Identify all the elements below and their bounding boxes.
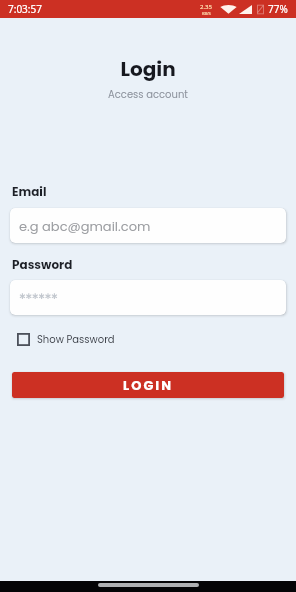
button[interactable]: e.g abc@gmail.com: [10, 208, 286, 243]
staticText: 77%: [268, 2, 288, 16]
staticText: Access account: [0, 87, 296, 101]
staticText: 7:03:57: [8, 2, 42, 16]
button[interactable]: LOGIN: [12, 372, 284, 398]
staticText: KB/S: [202, 11, 211, 16]
staticText: 2.35: [200, 3, 212, 11]
button[interactable]: Show Password: [17, 332, 115, 346]
staticText: LOGIN: [123, 376, 173, 394]
staticText: Show Password: [37, 332, 115, 346]
staticText: Email: [12, 183, 47, 200]
staticText: Password: [12, 256, 73, 273]
staticText: Login: [0, 55, 296, 83]
button[interactable]: [10, 280, 286, 315]
staticText: e.g abc@gmail.com: [19, 217, 151, 235]
